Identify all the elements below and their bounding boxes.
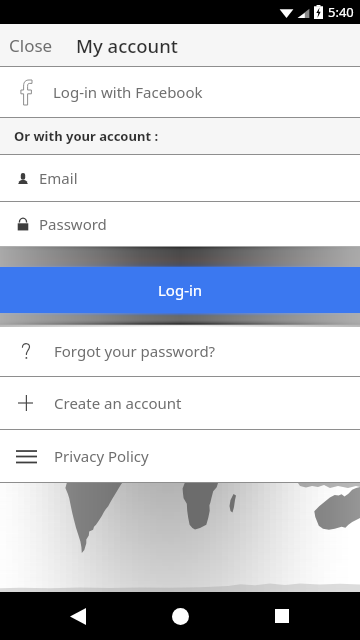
- staticText: Create an account: [54, 393, 182, 413]
- button[interactable]: Close: [0, 26, 59, 65]
- staticText: My account: [76, 33, 178, 58]
- staticText: Log-in: [158, 280, 203, 300]
- button[interactable]: Back: [54, 592, 102, 640]
- staticText: Close: [9, 34, 53, 57]
- staticText: Log-in with Facebook: [53, 82, 203, 102]
- staticText: Password: [39, 214, 107, 234]
- staticText: Or with your account :: [14, 127, 159, 145]
- staticText: 5:40: [328, 3, 354, 21]
- button[interactable]: Privacy Policy: [0, 430, 360, 482]
- button[interactable]: Recent apps: [258, 592, 306, 640]
- button[interactable]: Forgot your password?: [0, 326, 360, 376]
- button[interactable]: Email: [0, 155, 360, 201]
- staticText: Email: [39, 168, 78, 188]
- button[interactable]: Log-in: [0, 267, 360, 313]
- button[interactable]: Home: [156, 592, 204, 640]
- staticText: Privacy Policy: [54, 446, 149, 466]
- staticText: Forgot your password?: [54, 341, 216, 361]
- button[interactable]: Log-in with Facebook: [0, 67, 360, 117]
- button[interactable]: Password: [0, 202, 360, 246]
- button[interactable]: Create an account: [0, 377, 360, 429]
